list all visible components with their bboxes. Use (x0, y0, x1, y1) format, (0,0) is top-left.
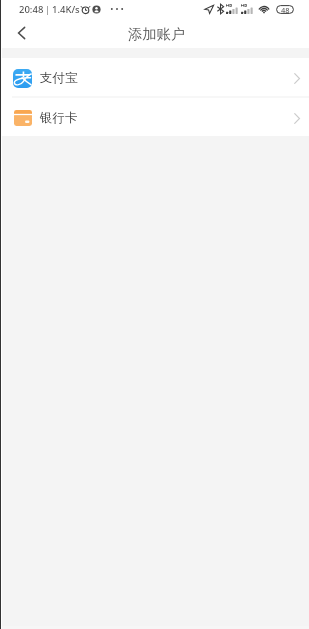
button[interactable]: 支付宝 (0, 58, 309, 96)
staticText: | (45, 3, 51, 16)
staticText: 20:48 (19, 3, 44, 16)
button[interactable]: 银行卡 (0, 98, 309, 136)
staticText: 1.4K/s (52, 3, 80, 16)
button[interactable]: Back (0, 18, 36, 48)
staticText: 添加账户 (128, 25, 185, 43)
staticText: 支付宝 (40, 70, 78, 86)
staticText: 48 (281, 5, 290, 14)
staticText: 银行卡 (40, 110, 78, 126)
